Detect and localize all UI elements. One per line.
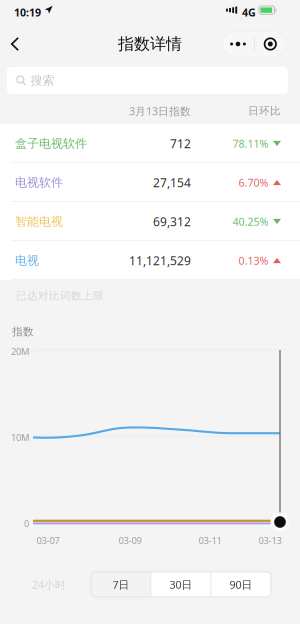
button[interactable]: 搜索 — [7, 67, 288, 94]
staticText: 指数详情 — [118, 34, 182, 54]
staticText: 10:19 — [14, 5, 41, 19]
button[interactable]: 90日 — [211, 572, 271, 597]
button[interactable]: Back — [0, 28, 30, 60]
button[interactable]: 7日 — [91, 572, 151, 597]
staticText: 智能电视 — [15, 214, 63, 229]
staticText: 03-13 — [258, 534, 281, 547]
staticText: 27,154 — [153, 174, 191, 191]
staticText: 03-07 — [36, 534, 59, 547]
staticText: 90日 — [229, 577, 252, 592]
staticText: 20M — [11, 345, 29, 358]
staticText: 24小时 — [32, 577, 66, 592]
staticText: 7日 — [112, 577, 129, 592]
staticText: 电视 — [15, 253, 39, 268]
button[interactable]: 24小时 — [20, 572, 78, 597]
staticText: 69,312 — [153, 213, 191, 230]
staticText: 11,121,529 — [129, 252, 191, 269]
button[interactable]: 盒子电视软件 — [0, 124, 300, 163]
staticText: 0.13% — [238, 253, 268, 268]
staticText: 指数 — [12, 325, 34, 338]
staticText: 712 — [170, 135, 191, 152]
staticText: 40.25% — [232, 214, 268, 229]
staticText: 盒子电视软件 — [15, 136, 87, 151]
staticText: 78.11% — [232, 136, 268, 151]
button[interactable]: 30日 — [151, 572, 211, 597]
button[interactable]: 智能电视 — [0, 202, 300, 241]
button[interactable]: 电视软件 — [0, 163, 300, 202]
staticText: 日环比 — [248, 104, 281, 118]
staticText: 03-11 — [198, 534, 221, 547]
button[interactable]: 电视 — [0, 241, 300, 280]
button[interactable]: Close mini program — [255, 31, 286, 56]
staticText: 已达对比词数上限 — [16, 289, 104, 302]
staticText: 4G — [242, 5, 256, 19]
staticText: 30日 — [169, 577, 192, 592]
staticText: 3月13日指数 — [129, 104, 191, 118]
staticText: 6.70% — [238, 175, 268, 190]
staticText: 10M — [11, 431, 29, 444]
staticText: 电视软件 — [15, 175, 63, 190]
staticText: 03-09 — [118, 534, 141, 547]
staticText: 0 — [24, 517, 29, 530]
button[interactable]: More options — [222, 31, 254, 56]
staticText: 搜索 — [31, 73, 55, 88]
